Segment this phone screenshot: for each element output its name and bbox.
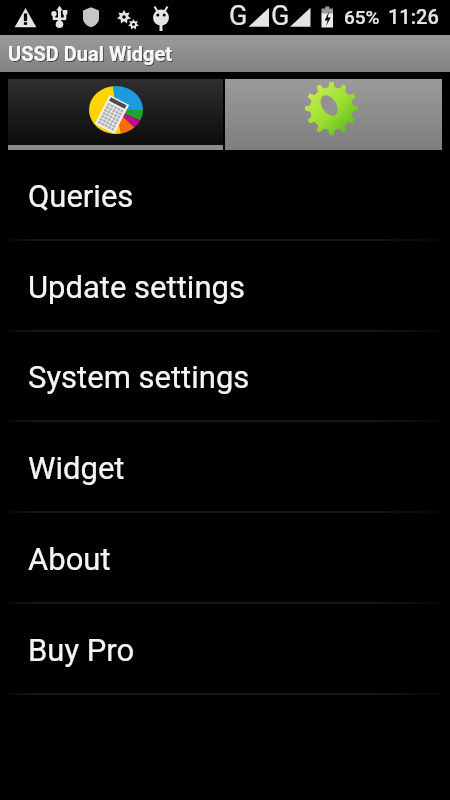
button[interactable]: Settings tab — [225, 79, 442, 150]
button[interactable]: Queries — [0, 150, 450, 241]
button[interactable]: System settings — [0, 331, 450, 422]
staticText: Update settings — [28, 269, 245, 305]
staticText: USSD Dual Widget — [8, 42, 172, 65]
staticText: Queries — [28, 178, 134, 214]
staticText: 11:26 — [388, 5, 439, 28]
staticText: G — [229, 0, 248, 32]
staticText: G — [271, 0, 290, 32]
staticText: Buy Pro — [28, 632, 135, 668]
button[interactable]: Queries tab — [8, 79, 223, 150]
button[interactable]: Buy Pro — [0, 604, 450, 695]
staticText: Widget — [28, 450, 125, 486]
staticText: System settings — [28, 359, 250, 395]
staticText: 65% — [344, 6, 380, 28]
staticText: About — [28, 541, 111, 577]
staticText: USSD Dual Widget — [9, 43, 173, 66]
button[interactable]: Update settings — [0, 241, 450, 332]
button[interactable]: About — [0, 513, 450, 604]
button[interactable]: Widget — [0, 422, 450, 513]
